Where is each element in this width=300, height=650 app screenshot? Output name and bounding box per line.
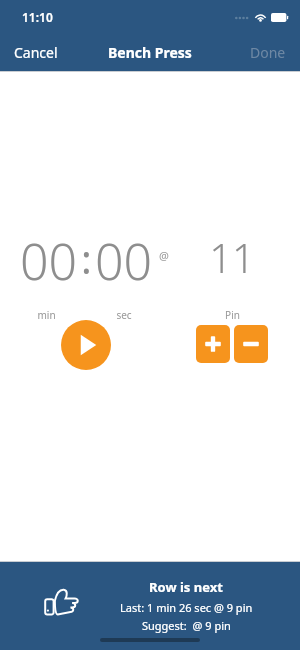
staticText: 00 xyxy=(95,227,153,295)
button[interactable]: Done xyxy=(236,37,300,68)
staticText: sec xyxy=(116,308,132,322)
button[interactable]: Start timer xyxy=(61,320,111,370)
staticText: 00 xyxy=(20,227,78,295)
button[interactable]: Cancel xyxy=(0,37,72,68)
staticText: min xyxy=(37,308,56,322)
staticText: : xyxy=(81,231,92,285)
staticText: Row is next xyxy=(149,578,223,596)
staticText: Pin xyxy=(225,308,240,322)
button[interactable]: Row is next xyxy=(0,562,300,650)
staticText: Cancel xyxy=(14,43,58,62)
staticText: Last: 1 min 26 sec @ 9 pin xyxy=(120,600,253,615)
staticText: 11:10 xyxy=(22,9,53,25)
staticText: Done xyxy=(250,43,286,62)
button[interactable]: Decrease pin xyxy=(234,325,268,363)
staticText: Suggest: @ 9 pin xyxy=(142,618,231,633)
button[interactable]: Increase pin xyxy=(196,325,230,363)
staticText: 11 xyxy=(209,230,255,284)
staticText: Bench Press xyxy=(108,43,192,62)
staticText: @ xyxy=(159,248,169,263)
